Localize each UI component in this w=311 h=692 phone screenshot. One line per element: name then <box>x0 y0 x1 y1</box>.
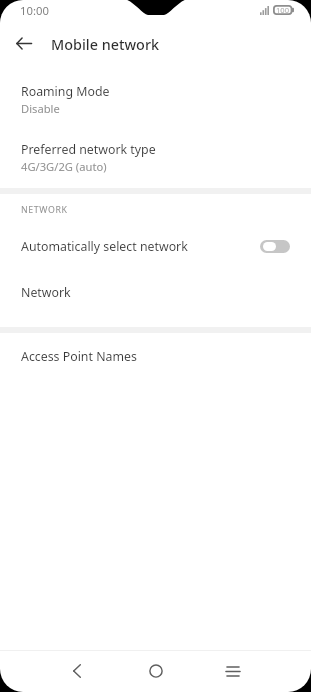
button[interactable]: Access Point Names <box>0 333 311 379</box>
button[interactable]: Automatically select network <box>0 223 311 269</box>
button[interactable]: Network <box>0 269 311 315</box>
staticText: 4G/3G/2G (auto) <box>21 159 107 174</box>
staticText: Automatically select network <box>21 238 188 255</box>
staticText: Disable <box>21 101 60 116</box>
staticText: Mobile network <box>51 35 160 55</box>
button[interactable]: Preferred network type <box>0 130 311 188</box>
button[interactable]: Back <box>59 653 95 689</box>
staticText: Network <box>21 284 71 301</box>
button[interactable]: Home <box>138 653 174 689</box>
staticText: Access Point Names <box>21 348 137 365</box>
button[interactable]: Back <box>8 29 40 61</box>
button[interactable]: Recent apps <box>215 653 251 689</box>
button[interactable]: Roaming Mode <box>0 71 311 130</box>
staticText: 10:00 <box>20 3 49 18</box>
staticText: Preferred network type <box>21 141 156 158</box>
staticText: Roaming Mode <box>21 83 110 100</box>
staticText: NETWORK <box>21 204 68 216</box>
staticText: 100 <box>276 5 290 15</box>
